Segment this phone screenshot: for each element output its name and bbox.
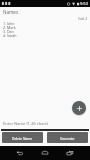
button[interactable]: Generate	[47, 132, 88, 143]
button[interactable]: 3. Dan	[0, 29, 90, 33]
button[interactable]: Add name	[72, 101, 86, 115]
button[interactable]: 2. Mark	[0, 25, 90, 29]
button[interactable]: Enter Name (1-26 chars)	[0, 121, 90, 131]
staticText: 4. Sarah	[3, 33, 17, 37]
staticText: 3. Dan	[3, 29, 14, 33]
button[interactable]: 4. Sarah	[0, 33, 90, 37]
button[interactable]: Recent apps	[64, 147, 76, 159]
staticText: Names	[3, 9, 19, 15]
button[interactable]: Home	[39, 147, 51, 159]
staticText: 2. Mark	[3, 25, 16, 29]
staticText: Delete Name	[12, 136, 33, 140]
staticText: 9:53	[80, 1, 88, 6]
staticText: Enter Name (1-26 chars)	[3, 121, 49, 126]
button[interactable]: 1. John	[0, 21, 90, 25]
button[interactable]: Back	[14, 147, 26, 159]
button[interactable]: Delete Name	[2, 132, 43, 143]
staticText: Total: 4	[0, 17, 87, 21]
staticText: 1. John	[3, 21, 15, 25]
staticText: Generate	[60, 136, 75, 140]
